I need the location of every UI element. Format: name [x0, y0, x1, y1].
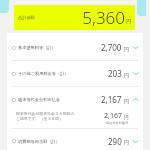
staticText: 円: [124, 115, 129, 121]
staticText: 税区分非対象等: [106, 121, 129, 125]
staticText: 円: [124, 46, 129, 52]
staticText: 基本使用料等（計）: [18, 45, 56, 50]
button[interactable]: 端末等代金分割支払金３６回目の: [7, 110, 143, 128]
button[interactable]: 消費税等相当額（計）: [7, 132, 143, 150]
staticText: 合計金額: [18, 15, 35, 20]
staticText: 円: [124, 72, 129, 78]
staticText: ご請求です。（全３６回）: [16, 116, 63, 121]
staticText: 円: [126, 18, 131, 24]
button[interactable]: 端末等代金分割支払金: [7, 89, 143, 110]
staticText: 203: [108, 68, 122, 79]
other: 折りたたむ: [132, 96, 139, 103]
staticText: 2,167: [104, 111, 122, 121]
button[interactable]: その他ご利用料金等（計）: [7, 63, 143, 84]
staticText: 端末等代金分割支払金: [18, 97, 60, 102]
staticText: 2,700: [101, 42, 122, 53]
staticText: 290: [108, 136, 122, 147]
button[interactable]: 基本使用料等（計）: [7, 37, 143, 58]
staticText: 消費税等相当額（計）: [18, 139, 60, 144]
staticText: 円: [124, 98, 129, 104]
other: 詳細を開く: [132, 70, 139, 77]
staticText: 2,167: [101, 94, 122, 105]
other: 詳細を開く: [132, 44, 139, 51]
staticText: 5,360: [82, 6, 125, 29]
button[interactable]: 合計金額: [14, 5, 135, 30]
staticText: 円: [124, 139, 129, 145]
other: 詳細を開く: [132, 138, 139, 145]
staticText: その他ご利用料金等（計）: [18, 71, 69, 76]
staticText: 端末等代金分割支払金３６回目の: [16, 111, 75, 116]
